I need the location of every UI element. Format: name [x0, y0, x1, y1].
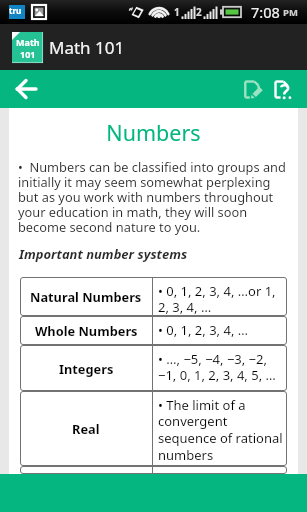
button[interactable]: Quiz: [267, 70, 297, 108]
staticText: • Numbers can be classified into groups …: [18, 158, 290, 236]
staticText: • The limit of a convergent sequence of …: [158, 396, 285, 464]
staticText: • 0, 1, 2, 3, 4, …: [158, 321, 249, 339]
staticText: 2: [196, 5, 202, 19]
staticText: Important number systems: [19, 245, 188, 263]
button[interactable]: Back: [0, 70, 52, 108]
staticText: true: [9, 5, 25, 19]
staticText: 7:08: [251, 2, 280, 22]
staticText: 101: [20, 48, 36, 60]
staticText: • …, −5, −4, −3, −2, −1, 0, 1, 2, 3, 4, …: [158, 350, 285, 384]
staticText: Natural Numbers: [30, 288, 142, 305]
staticText: PM: [283, 6, 298, 19]
staticText: Integers: [59, 360, 114, 377]
button[interactable]: Edit note: [233, 70, 263, 108]
staticText: Whole Numbers: [35, 322, 138, 339]
staticText: Math 101: [49, 36, 125, 59]
staticText: Numbers: [9, 118, 298, 147]
staticText: • 0, 1, 2, 3, 4, …or 1, 2, 3, 4, …: [158, 282, 285, 316]
staticText: 1: [174, 5, 180, 19]
staticText: Real: [72, 420, 100, 437]
staticText: Math: [16, 36, 40, 48]
